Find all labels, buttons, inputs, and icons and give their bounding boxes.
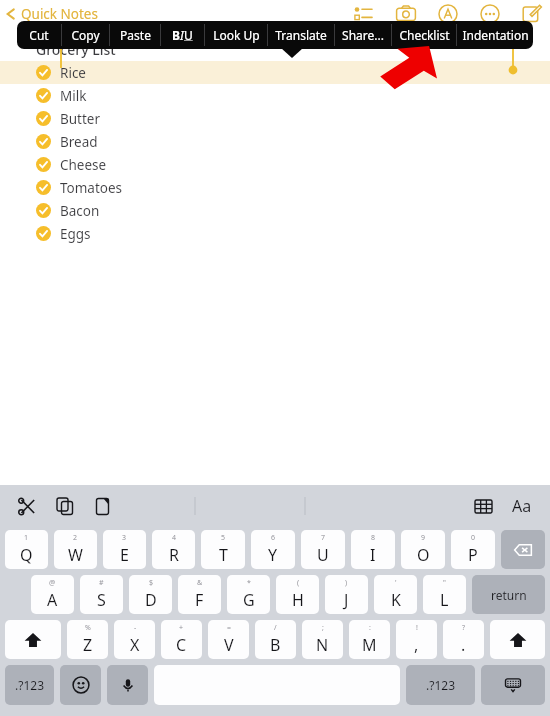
staticText: Milk xyxy=(60,87,87,105)
button[interactable]: Look Up xyxy=(205,21,267,49)
button[interactable]: ( xyxy=(276,575,319,614)
staticText: Indentation xyxy=(462,27,529,43)
button[interactable]: Share... xyxy=(335,21,391,49)
button[interactable]: / xyxy=(255,620,296,659)
button[interactable]: # xyxy=(80,575,123,614)
staticText: ; xyxy=(322,623,324,633)
button[interactable]: 1 xyxy=(5,530,48,569)
button[interactable]: Translate xyxy=(268,21,334,49)
button[interactable]: Quick Notes xyxy=(4,5,98,23)
button[interactable]: Markup xyxy=(436,2,460,26)
button[interactable]: New note xyxy=(520,2,544,26)
staticText: L xyxy=(440,589,449,611)
staticText: ( xyxy=(297,578,300,588)
button[interactable]: .?123 xyxy=(5,665,54,705)
button[interactable]: More options xyxy=(478,2,502,26)
staticText: 2 xyxy=(73,533,78,543)
staticText: ' xyxy=(395,578,397,588)
staticText: " xyxy=(443,578,446,588)
button[interactable]: - xyxy=(114,620,155,659)
button[interactable]: ' xyxy=(374,575,417,614)
button[interactable]: 4 xyxy=(152,530,195,569)
button[interactable]: + xyxy=(161,620,202,659)
button[interactable]: 0 xyxy=(451,530,495,569)
staticText: = xyxy=(227,623,232,633)
button[interactable]: 7 xyxy=(301,530,345,569)
button[interactable]: Backspace xyxy=(501,530,545,569)
staticText: 3 xyxy=(122,533,127,543)
button[interactable]: Camera xyxy=(394,2,418,26)
staticText: Z xyxy=(83,634,93,656)
button[interactable]: Cut xyxy=(17,21,61,49)
staticText: Tomatoes xyxy=(60,179,123,197)
staticText: & xyxy=(197,578,203,588)
button[interactable]: Copy xyxy=(50,491,80,521)
button[interactable]: $ xyxy=(129,575,172,614)
button[interactable]: Bacon xyxy=(0,199,550,222)
staticText: : xyxy=(369,623,371,633)
button[interactable]: Tomatoes xyxy=(0,176,550,199)
button[interactable]: B xyxy=(161,21,204,49)
button[interactable]: % xyxy=(67,620,108,659)
button[interactable]: .?123 xyxy=(406,665,475,705)
button[interactable]: Copy xyxy=(62,21,109,49)
button[interactable]: Hide keyboard xyxy=(481,665,545,705)
button[interactable]: 3 xyxy=(103,530,146,569)
button[interactable]: 8 xyxy=(351,530,395,569)
button[interactable]: 9 xyxy=(401,530,445,569)
button[interactable]: = xyxy=(208,620,249,659)
button[interactable]: ! xyxy=(396,620,437,659)
button[interactable]: : xyxy=(349,620,390,659)
button[interactable]: Butter xyxy=(0,107,550,130)
staticText: ? xyxy=(462,623,466,633)
button[interactable]: Indentation xyxy=(457,21,533,49)
staticText: ) xyxy=(345,578,348,588)
button[interactable]: Cut xyxy=(12,491,42,521)
button[interactable]: Dictate xyxy=(107,665,148,705)
staticText: 9 xyxy=(421,533,426,543)
button[interactable]: & xyxy=(178,575,221,614)
button[interactable]: Rice xyxy=(0,61,550,84)
button[interactable]: 2 xyxy=(54,530,97,569)
staticText: V xyxy=(224,634,234,656)
button[interactable]: return xyxy=(472,575,545,614)
button[interactable]: " xyxy=(423,575,466,614)
staticText: 6 xyxy=(271,533,276,543)
button[interactable]: Checklist formatting xyxy=(352,2,376,26)
staticText: . xyxy=(461,634,466,656)
button[interactable]: Text formatting xyxy=(506,490,538,522)
button[interactable]: Insert table xyxy=(468,491,498,521)
staticText: Rice xyxy=(60,64,86,82)
button[interactable]: Milk xyxy=(0,84,550,107)
staticText: Share... xyxy=(342,27,384,43)
button[interactable]: ? xyxy=(443,620,484,659)
button[interactable]: Checklist xyxy=(392,21,456,49)
button[interactable]: Emoji xyxy=(60,665,101,705)
button[interactable]: 5 xyxy=(201,530,245,569)
button[interactable]: Shift xyxy=(5,620,61,659)
button[interactable]: * xyxy=(227,575,270,614)
staticText: 4 xyxy=(172,533,177,543)
button[interactable]: ; xyxy=(302,620,343,659)
staticText: 5 xyxy=(221,533,226,543)
staticText: Cheese xyxy=(60,156,107,174)
button[interactable]: Paste xyxy=(88,491,118,521)
staticText: U xyxy=(317,544,329,566)
button[interactable]: Eggs xyxy=(0,222,550,245)
button[interactable]: Bread xyxy=(0,130,550,153)
staticText: Y xyxy=(268,544,278,566)
button[interactable]: @ xyxy=(31,575,74,614)
button[interactable]: Paste xyxy=(110,21,160,49)
button[interactable]: ) xyxy=(325,575,368,614)
button[interactable]: Shift xyxy=(490,620,545,659)
staticText: Cut xyxy=(29,27,49,43)
staticText: S xyxy=(97,589,106,611)
staticText: B xyxy=(270,634,281,656)
button[interactable]: Cheese xyxy=(0,153,550,176)
button[interactable]: 6 xyxy=(251,530,295,569)
staticText: U xyxy=(184,27,193,43)
staticText: E xyxy=(120,544,129,566)
staticText: * xyxy=(247,578,251,588)
staticText: F xyxy=(195,589,204,611)
